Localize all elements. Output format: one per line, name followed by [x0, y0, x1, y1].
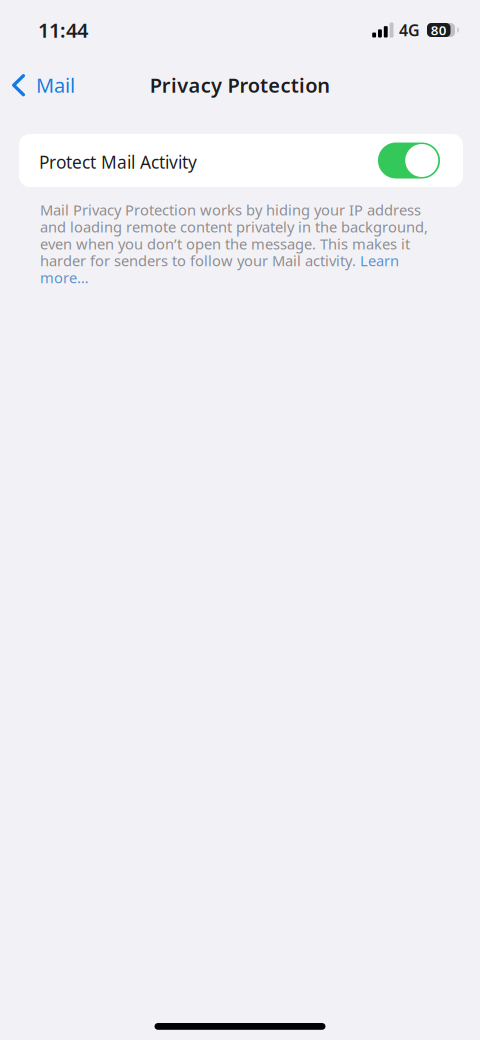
staticText: 80	[431, 21, 447, 39]
button[interactable]: Protect Mail Activity	[19, 134, 463, 187]
staticText: Privacy Protection	[150, 72, 330, 98]
button[interactable]: Mail	[0, 63, 89, 107]
staticText: Mail Privacy Protection works by hiding …	[40, 200, 428, 287]
staticText: 4G	[399, 19, 420, 41]
staticText: Protect Mail Activity	[39, 150, 197, 173]
staticText: 11:44	[38, 17, 88, 43]
staticText: Mail	[36, 72, 75, 98]
